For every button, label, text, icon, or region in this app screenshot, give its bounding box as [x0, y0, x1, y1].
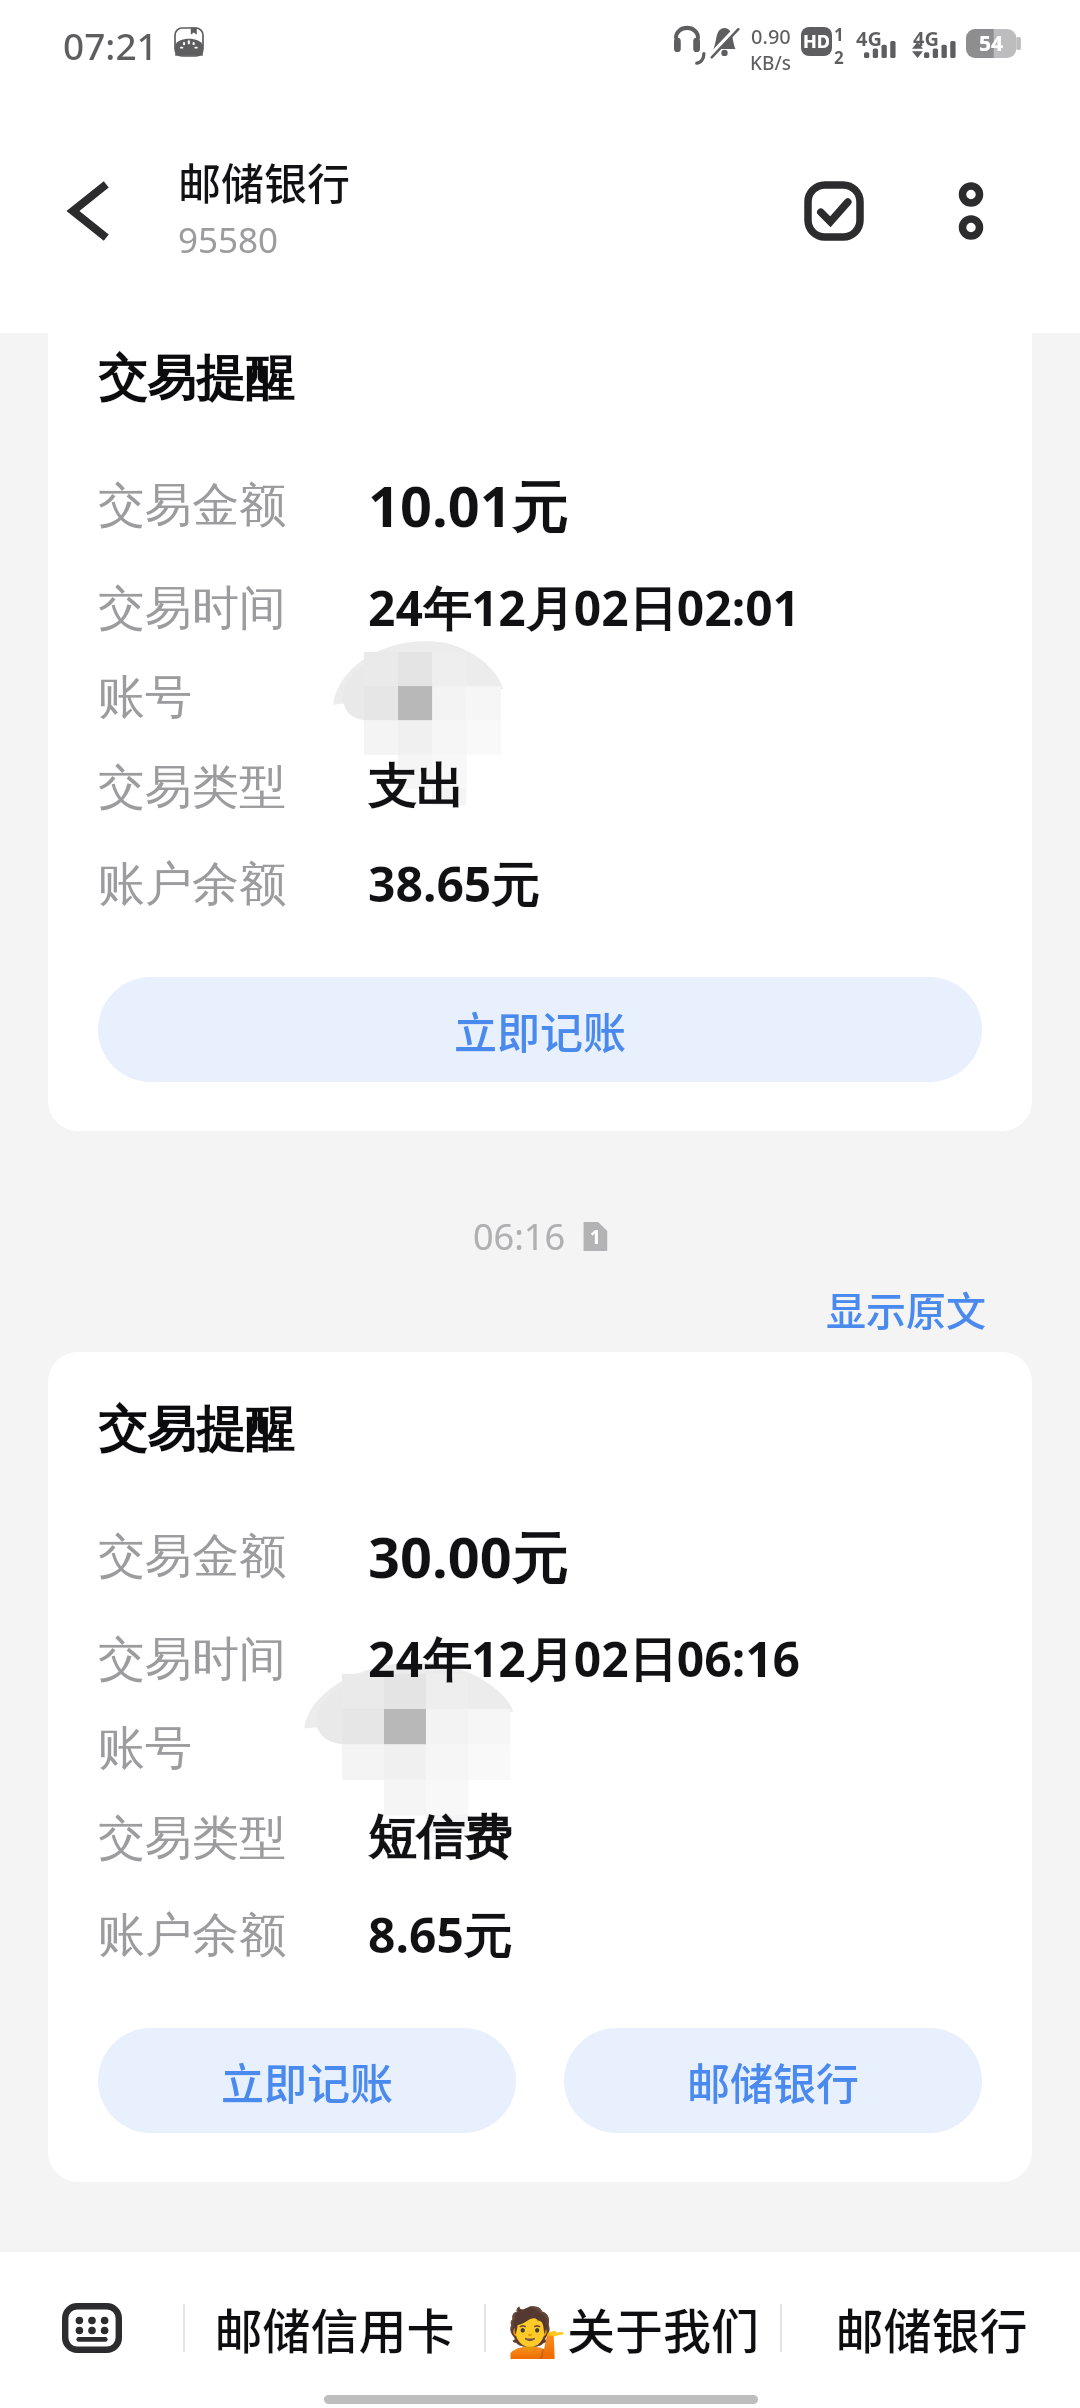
button[interactable]: Back	[22, 145, 154, 277]
staticText: 24年12月02日02:01	[368, 575, 801, 641]
button[interactable]: 邮储信用卡	[185, 2252, 484, 2404]
staticText: 8.65元	[368, 1902, 512, 1968]
button[interactable]: 立即记账	[98, 977, 982, 1082]
staticText: 交易类型	[98, 1809, 286, 1868]
staticText: 0.90	[751, 23, 791, 50]
staticText: 支出	[368, 757, 464, 817]
staticText: 账号	[98, 1719, 192, 1778]
staticText: 交易金额	[98, 1527, 286, 1586]
button[interactable]: 显示原文	[820, 1274, 992, 1344]
staticText: 短信费	[368, 1808, 512, 1868]
staticText: 邮储银行	[835, 2293, 1028, 2363]
staticText: 账户余额	[98, 1906, 286, 1965]
staticText: 交易金额	[98, 476, 286, 535]
button[interactable]: Select messages	[780, 157, 888, 265]
staticText: 10.01元	[368, 467, 568, 543]
button[interactable]: 邮储银行	[564, 2028, 982, 2133]
staticText: 交易提醒	[98, 348, 294, 410]
staticText: 06:16	[473, 1212, 566, 1261]
staticText: 30.00元	[368, 1518, 568, 1594]
staticText: 4G	[913, 25, 939, 52]
button[interactable]: 立即记账	[98, 2028, 516, 2133]
staticText: 交易时间	[98, 579, 286, 638]
staticText: 邮储信用卡	[214, 2293, 455, 2363]
staticText: 交易类型	[98, 758, 286, 817]
staticText: KB/s	[750, 50, 791, 76]
staticText: 95580	[178, 216, 279, 264]
staticText: 交易时间	[98, 1630, 286, 1689]
staticText: 4G	[856, 25, 882, 52]
staticText: 账号	[98, 668, 192, 727]
button[interactable]: 邮储银行	[782, 2252, 1080, 2404]
staticText: 💁关于我们	[507, 2293, 759, 2363]
staticText: 显示原文	[826, 1280, 986, 1338]
staticText: 立即记账	[221, 2050, 393, 2112]
staticText: 1	[834, 23, 844, 46]
staticText: 1	[590, 1224, 601, 1250]
staticText: HD	[803, 29, 830, 54]
staticText: 07:21	[63, 20, 158, 70]
staticText: 54	[979, 29, 1004, 58]
staticText: 2	[834, 46, 844, 69]
staticText: 24年12月02日06:16	[368, 1626, 801, 1692]
button[interactable]: 💁关于我们	[486, 2252, 780, 2404]
staticText: 交易提醒	[98, 1399, 294, 1461]
staticText: 立即记账	[454, 999, 626, 1061]
button[interactable]: More options	[919, 159, 1023, 263]
button[interactable]: 交易提醒	[48, 301, 1032, 1131]
staticText: 38.65元	[368, 851, 540, 917]
button[interactable]: Keyboard	[0, 2252, 183, 2404]
button[interactable]: 交易提醒	[48, 1352, 1032, 2182]
staticText: 邮储银行	[178, 150, 350, 212]
staticText: 账户余额	[98, 855, 286, 914]
staticText: 邮储银行	[687, 2050, 859, 2112]
